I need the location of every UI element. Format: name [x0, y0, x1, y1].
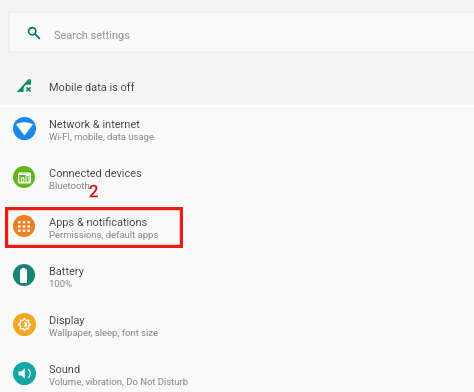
other: Mobile data is off [17, 79, 31, 92]
staticText: Wi-Fi, mobile, data usage [49, 131, 154, 142]
staticText: Battery [49, 265, 84, 278]
button[interactable]: Display [0, 300, 474, 349]
button[interactable]: Search [9, 12, 474, 52]
staticText: Connected devices [49, 167, 142, 180]
button[interactable]: Network & internet [0, 104, 474, 153]
button[interactable]: Battery [0, 251, 474, 300]
staticText: Sound [49, 363, 81, 376]
other: Search [28, 27, 41, 40]
staticText: Wallpaper, sleep, font size [49, 327, 158, 338]
staticText: Bluetooth [49, 180, 90, 191]
staticText: Volume, vibration, Do Not Disturb [49, 376, 189, 387]
staticText: Display [49, 314, 85, 327]
staticText: Permissions, default apps [49, 229, 159, 240]
button[interactable]: Connected devices [0, 153, 474, 202]
staticText: Network & internet [49, 118, 140, 131]
staticText: 2 [89, 182, 99, 201]
staticText: 100% [49, 278, 72, 289]
staticText: Mobile data is off [49, 81, 135, 94]
staticText: Apps & notifications [49, 216, 148, 229]
staticText: Search settings [54, 29, 130, 42]
button[interactable]: Mobile data is off [0, 56, 474, 104]
button[interactable]: Sound [0, 349, 474, 392]
button[interactable]: Apps & notifications [0, 202, 474, 251]
